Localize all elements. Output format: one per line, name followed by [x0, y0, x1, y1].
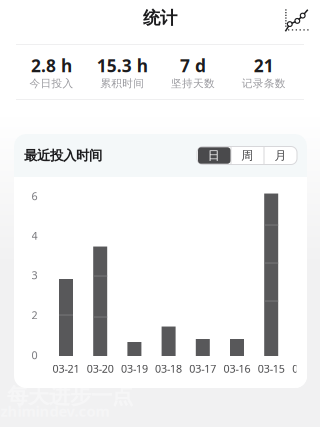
staticText: 每天进步一点 [7, 383, 133, 409]
staticText: 3 [31, 268, 37, 282]
staticText: 03-18 [155, 361, 182, 376]
button[interactable]: 日 [197, 146, 230, 164]
staticText: 6 [31, 189, 37, 203]
staticText: 周 [241, 148, 253, 163]
staticText: 累积时间 [100, 77, 144, 90]
staticText: 03-20 [87, 361, 114, 376]
staticText: 今日投入 [29, 77, 73, 90]
staticText: 03-16 [223, 361, 250, 376]
staticText: 15.3 h [97, 54, 148, 77]
staticText: 最近投入时间 [24, 147, 102, 164]
staticText: 4 [31, 228, 37, 243]
staticText: 03-17 [189, 361, 216, 376]
staticText: 03-19 [121, 361, 148, 376]
staticText: 月 [274, 148, 286, 163]
button[interactable]: 周 [230, 146, 264, 164]
staticText: 统计 [143, 7, 177, 29]
staticText: 0 [292, 361, 298, 376]
staticText: 0 [31, 348, 37, 362]
staticText: 7 d [180, 54, 206, 77]
staticText: 2.8 h [31, 54, 72, 77]
button[interactable]: 月 [264, 146, 297, 164]
staticText: 03-15 [258, 361, 285, 376]
staticText: 2 [31, 308, 37, 322]
staticText: 坚持天数 [171, 77, 215, 90]
staticText: 03-21 [52, 361, 79, 376]
button[interactable]: 趋势图表 [285, 8, 308, 31]
staticText: 日 [208, 148, 220, 163]
staticText: 21 [254, 54, 274, 77]
staticText: 记录条数 [242, 77, 286, 90]
